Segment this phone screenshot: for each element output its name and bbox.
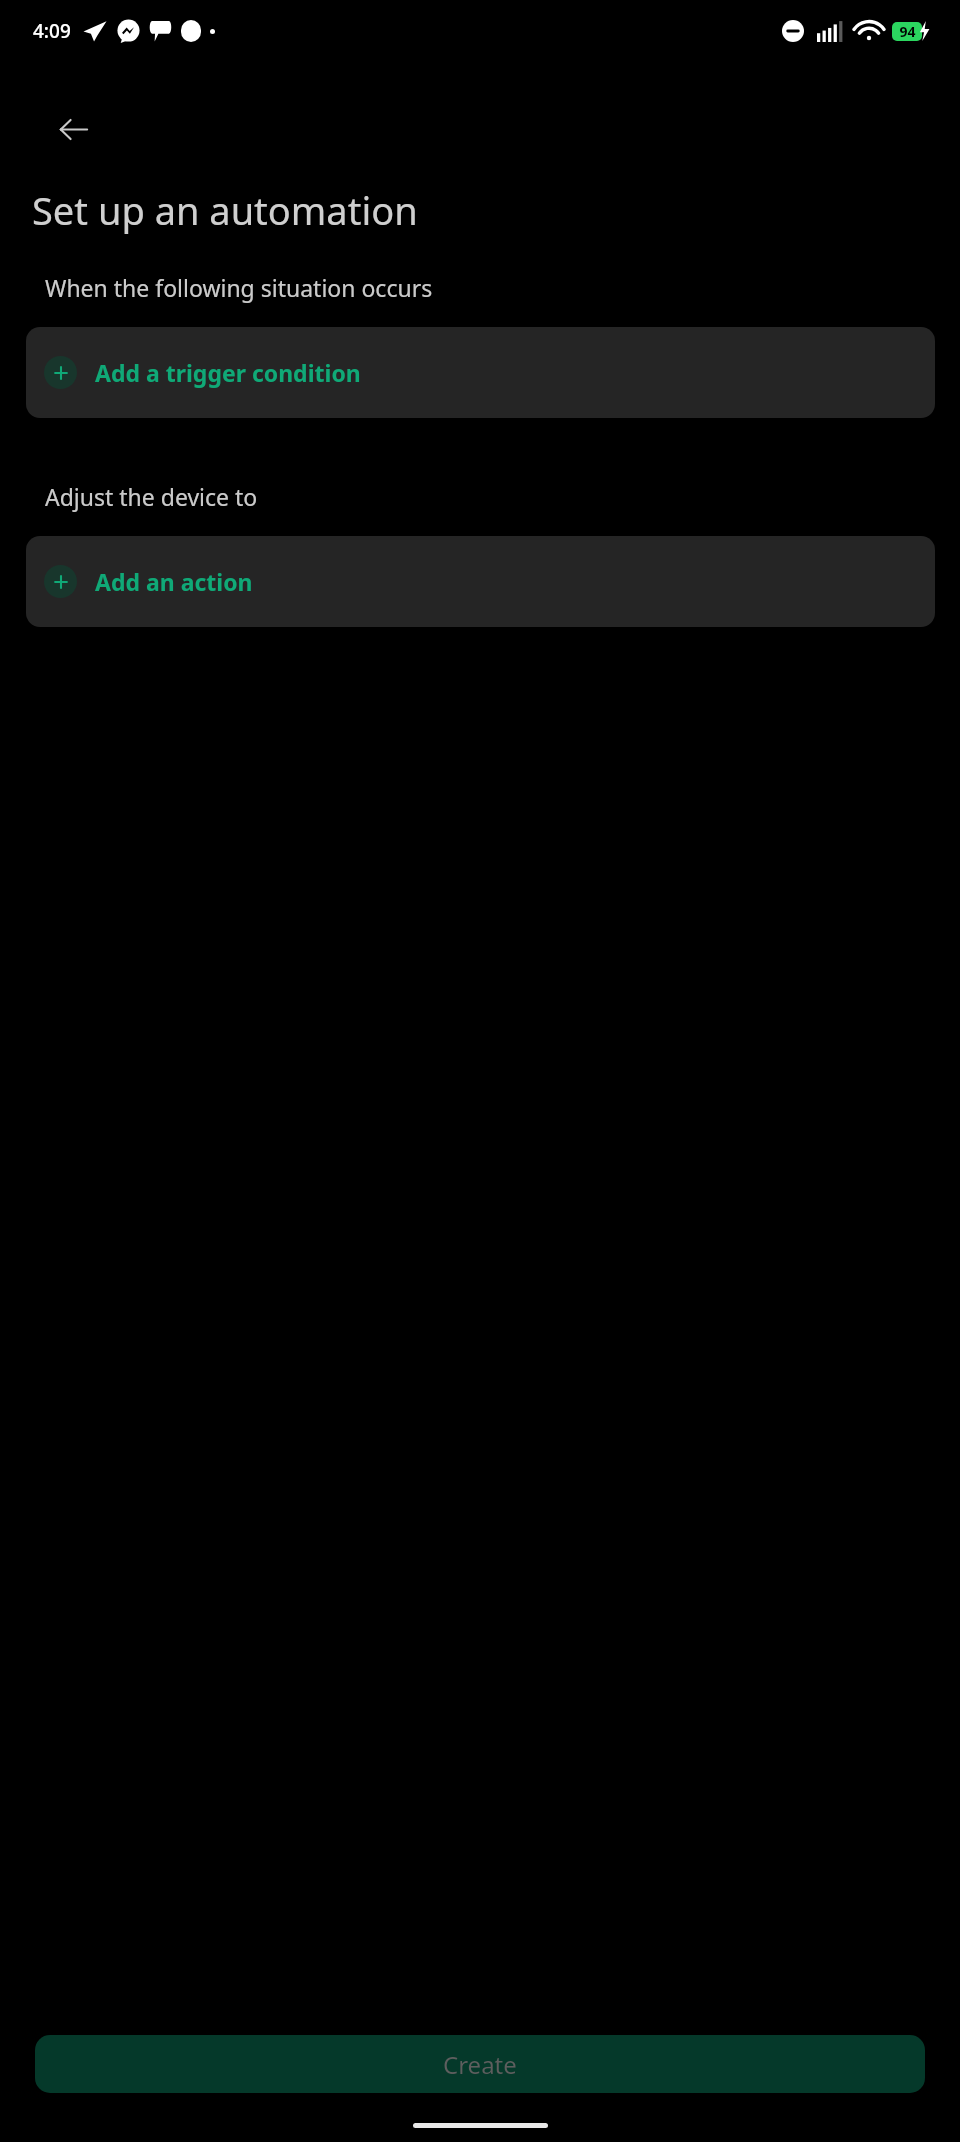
button[interactable]: Create — [35, 2035, 925, 2093]
staticText: Adjust the device to — [45, 481, 258, 512]
button[interactable]: Add an action — [26, 536, 935, 627]
button[interactable]: Add a trigger condition — [26, 327, 935, 418]
staticText: 4:09 — [33, 18, 71, 44]
staticText: Add an action — [95, 566, 253, 597]
staticText: Create — [443, 2048, 517, 2081]
staticText: Set up an automation — [32, 184, 418, 236]
staticText: 94 — [899, 22, 916, 41]
button[interactable]: Back — [40, 96, 106, 162]
staticText: Add a trigger condition — [95, 357, 361, 388]
staticText: When the following situation occurs — [45, 272, 433, 303]
